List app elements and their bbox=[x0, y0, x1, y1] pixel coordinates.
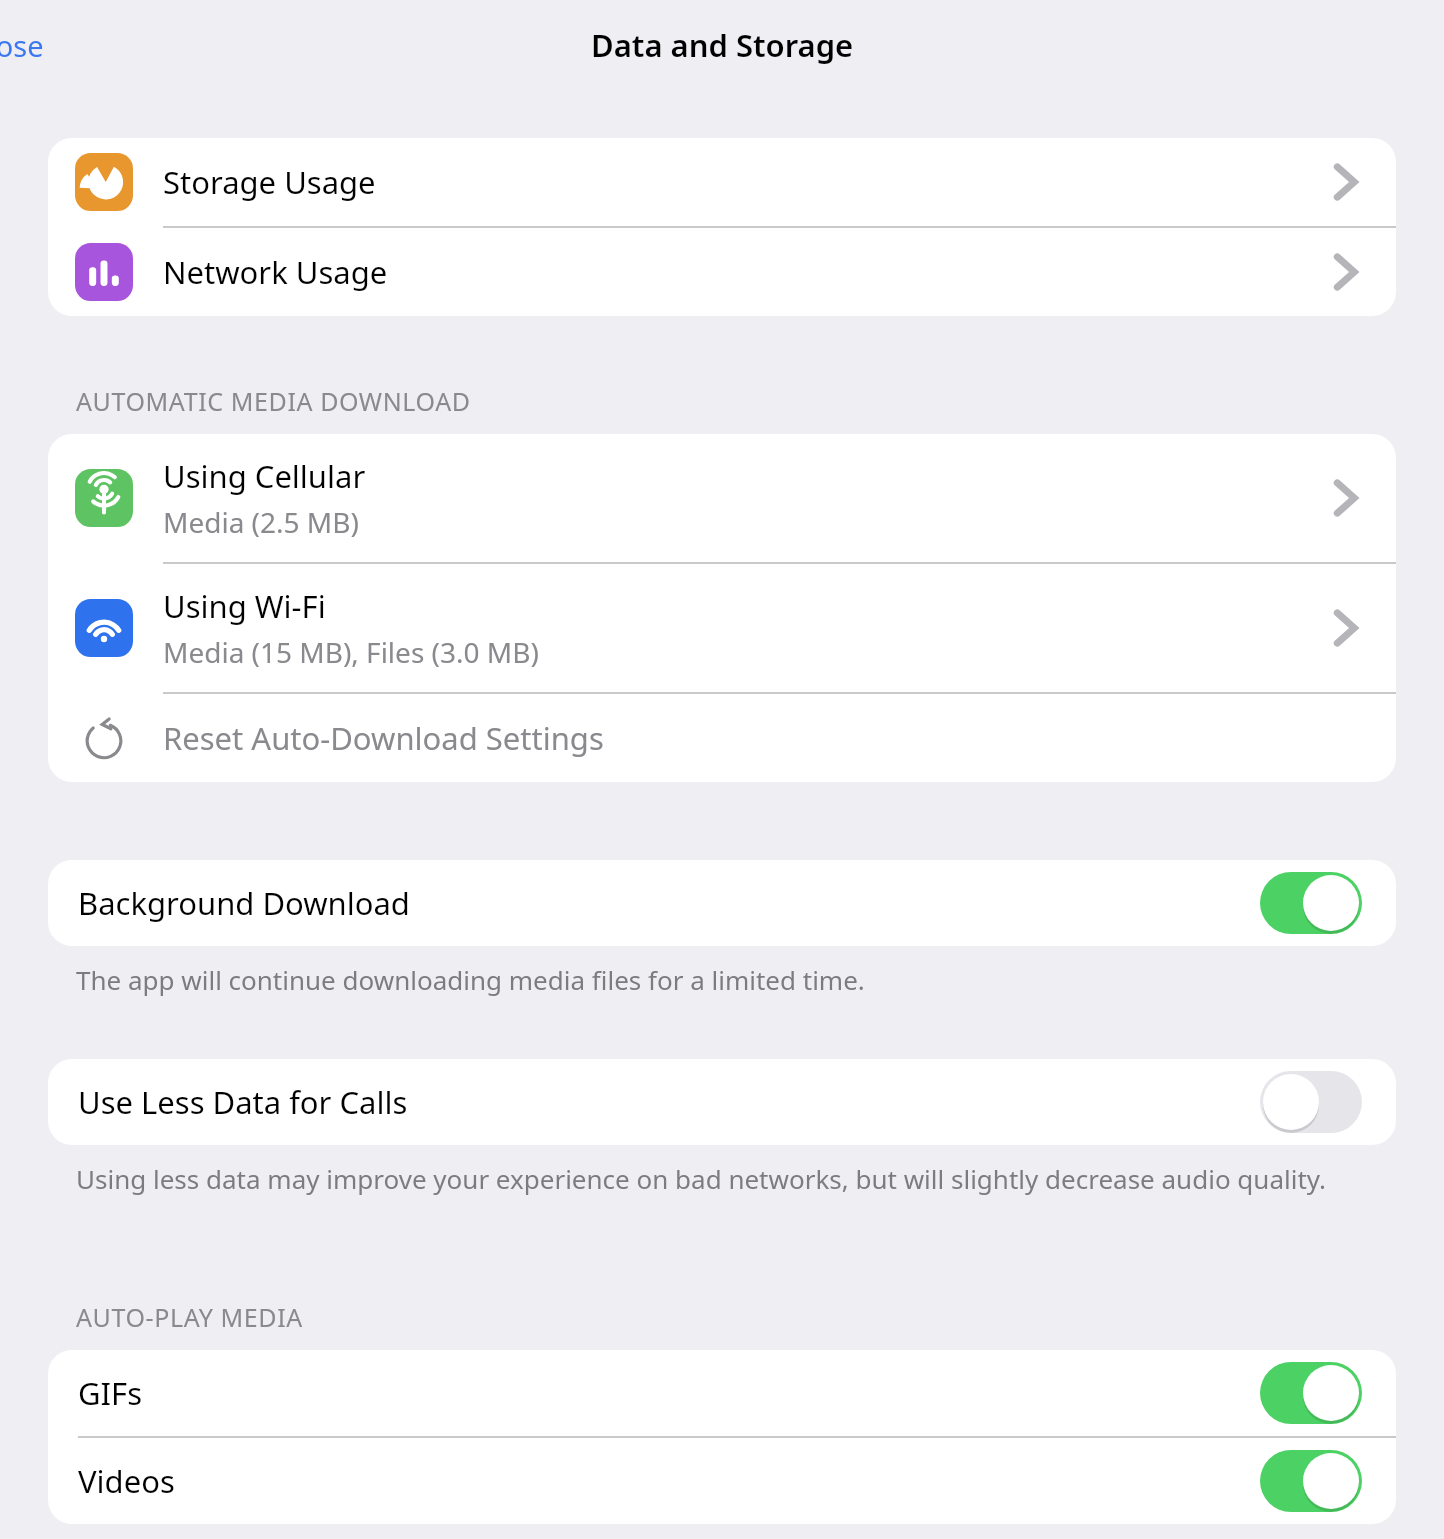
staticText: Use Less Data for Calls bbox=[78, 1081, 1260, 1123]
staticText: Close bbox=[0, 26, 44, 65]
other: Use Less Data for Calls toggle bbox=[1260, 1071, 1362, 1133]
staticText: Storage Usage bbox=[163, 161, 376, 203]
staticText: Videos bbox=[78, 1460, 1260, 1502]
button[interactable]: Using Wi-Fi bbox=[48, 564, 1396, 692]
button[interactable]: Use Less Data for Calls bbox=[48, 1059, 1396, 1145]
button[interactable]: Storage Usage bbox=[48, 138, 1396, 226]
button[interactable]: Close bbox=[0, 18, 54, 73]
button[interactable]: Reset Auto-Download Settings bbox=[48, 694, 1396, 782]
staticText: Background Download bbox=[78, 882, 1260, 924]
staticText: Media (2.5 MB) bbox=[163, 503, 359, 541]
button[interactable]: Videos bbox=[48, 1438, 1396, 1524]
staticText: Media (15 MB), Files (3.0 MB) bbox=[163, 633, 539, 671]
other: Background Download toggle bbox=[1260, 872, 1362, 934]
button[interactable]: Background Download bbox=[48, 860, 1396, 946]
other: GIFs toggle bbox=[1260, 1362, 1362, 1424]
staticText: Reset Auto-Download Settings bbox=[163, 717, 604, 759]
button[interactable]: GIFs bbox=[48, 1350, 1396, 1436]
staticText: AUTO-PLAY MEDIA bbox=[76, 1300, 303, 1334]
staticText: Data and Storage bbox=[591, 24, 854, 66]
other: Videos toggle bbox=[1260, 1450, 1362, 1512]
staticText: GIFs bbox=[78, 1372, 1260, 1414]
staticText: Using Cellular bbox=[163, 455, 366, 497]
staticText: The app will continue downloading media … bbox=[76, 962, 865, 997]
button[interactable]: Using Cellular bbox=[48, 434, 1396, 562]
staticText: Using less data may improve your experie… bbox=[76, 1161, 1327, 1196]
staticText: Network Usage bbox=[163, 251, 388, 293]
button[interactable]: Network Usage bbox=[48, 228, 1396, 316]
staticText: AUTOMATIC MEDIA DOWNLOAD bbox=[76, 384, 471, 418]
staticText: Using Wi-Fi bbox=[163, 585, 326, 627]
